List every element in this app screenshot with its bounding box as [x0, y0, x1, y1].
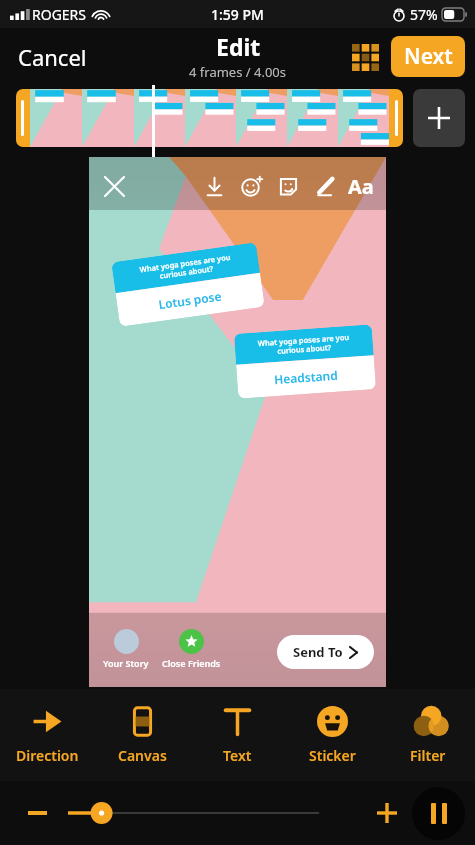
button[interactable]: Sticker	[273, 171, 303, 201]
staticText: What yoga poses are you curious about?	[257, 332, 350, 357]
staticText: Filter	[410, 746, 446, 765]
staticText: Lotus pose	[157, 287, 223, 312]
button[interactable]: Next	[391, 36, 465, 77]
staticText: 57%	[410, 5, 438, 24]
staticText: Aa	[348, 173, 374, 200]
button[interactable]: Close Friends	[162, 629, 221, 669]
staticText: What yoga poses are you curious about?	[139, 252, 232, 283]
staticText: Canvas	[118, 746, 167, 765]
button[interactable]: Canvas	[95, 689, 190, 781]
staticText: Sticker	[309, 746, 356, 765]
button[interactable]: Grid view	[345, 37, 385, 77]
button[interactable]: Decrease	[22, 798, 52, 828]
button[interactable]	[16, 89, 403, 147]
button[interactable]: Pause	[412, 787, 465, 840]
staticText: 4 frames / 4.00s	[189, 63, 287, 81]
staticText: Next	[404, 42, 453, 71]
staticText: Cancel	[18, 42, 87, 72]
button[interactable]: Your Story	[103, 629, 149, 669]
button[interactable]: What yoga poses are you curious about?	[234, 324, 376, 399]
staticText: ROGERS	[32, 5, 87, 24]
button[interactable]: Effects	[236, 171, 266, 201]
staticText: 1:59 PM	[211, 5, 264, 24]
button[interactable]: Direction	[0, 689, 95, 781]
button[interactable]: Filter	[380, 689, 475, 781]
staticText: Direction	[16, 746, 79, 765]
staticText: Headstand	[274, 367, 339, 387]
button[interactable]: Draw	[310, 171, 340, 201]
staticText: Edit	[216, 31, 261, 62]
button[interactable]: Increase	[370, 796, 404, 830]
button[interactable]: Send To	[277, 635, 374, 669]
staticText: Text	[223, 746, 252, 765]
staticText: Your Story	[103, 657, 149, 669]
staticText: Send To	[293, 643, 343, 661]
button[interactable]: Save	[199, 171, 229, 201]
button[interactable]: What yoga poses are you curious about?	[111, 242, 265, 327]
button[interactable]: Text	[344, 169, 378, 203]
button[interactable]: Sticker	[285, 689, 380, 781]
button[interactable]: Cancel	[0, 36, 105, 78]
button[interactable]: Text	[190, 689, 285, 781]
button[interactable]: Add frame	[413, 89, 465, 147]
button[interactable]: Close	[97, 169, 131, 203]
staticText: Close Friends	[162, 657, 221, 669]
